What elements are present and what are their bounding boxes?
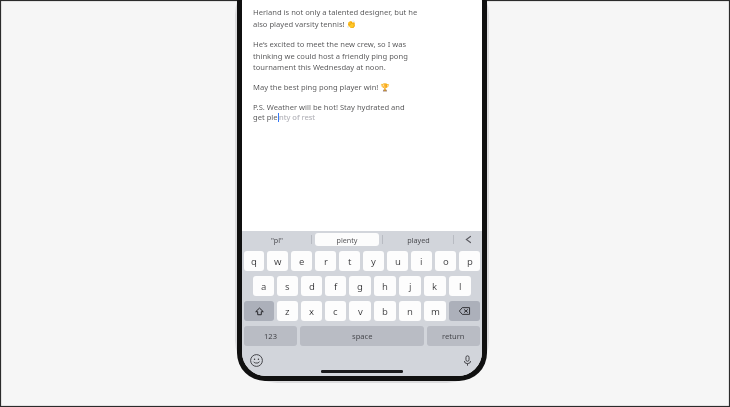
button[interactable]: Collapse predictions — [454, 231, 482, 248]
button[interactable]: l — [449, 276, 471, 296]
button[interactable]: o — [435, 251, 456, 271]
staticText: "pl" — [271, 235, 283, 245]
staticText: played — [407, 235, 430, 245]
button[interactable]: g — [349, 276, 371, 296]
staticText: get ple — [253, 112, 278, 122]
staticText: k — [432, 280, 438, 293]
staticText: He‘s excited to meet the new crew, so I … — [253, 39, 408, 72]
button[interactable]: Emoji — [250, 354, 263, 367]
staticText: s — [285, 280, 290, 293]
button[interactable]: c — [325, 301, 346, 321]
staticText: d — [309, 280, 315, 293]
staticText: m — [431, 305, 440, 318]
staticText: l — [459, 280, 462, 293]
staticText: i — [420, 255, 423, 268]
staticText: w — [274, 255, 282, 268]
button[interactable]: q — [244, 251, 264, 271]
staticText: 123 — [264, 331, 278, 341]
button[interactable]: i — [411, 251, 432, 271]
staticText: t — [348, 255, 352, 268]
staticText: v — [358, 305, 363, 318]
button[interactable]: space — [300, 326, 424, 346]
staticText: nty of rest — [279, 112, 316, 122]
button[interactable]: 123 — [244, 326, 297, 346]
staticText: j — [409, 280, 412, 293]
button[interactable]: z — [277, 301, 298, 321]
staticText: r — [324, 255, 328, 268]
button[interactable]: n — [399, 301, 421, 321]
button[interactable]: played — [386, 233, 450, 246]
button[interactable]: y — [363, 251, 384, 271]
staticText: o — [443, 255, 449, 268]
staticText: c — [333, 305, 338, 318]
staticText: g — [357, 280, 363, 293]
staticText: P.S. Weather will be hot! Stay hydrated … — [253, 102, 405, 112]
button[interactable]: Shift — [244, 301, 274, 321]
staticText: May the best ping pong player win! 🏆 — [253, 82, 390, 92]
button[interactable]: f — [325, 276, 346, 296]
button[interactable]: m — [424, 301, 446, 321]
staticText: Herland is not only a talented designer,… — [253, 7, 418, 29]
button[interactable]: p — [459, 251, 480, 271]
staticText: y — [371, 255, 376, 268]
button[interactable]: s — [277, 276, 298, 296]
button[interactable]: h — [374, 276, 396, 296]
button[interactable]: "pl" — [245, 233, 308, 246]
staticText: space — [352, 331, 373, 341]
staticText: n — [407, 305, 413, 318]
button[interactable]: return — [427, 326, 480, 346]
button[interactable]: b — [374, 301, 396, 321]
button[interactable]: r — [315, 251, 336, 271]
button[interactable]: x — [301, 301, 322, 321]
staticText: return — [442, 331, 465, 341]
button[interactable]: w — [267, 251, 288, 271]
button[interactable]: v — [349, 301, 371, 321]
button[interactable]: Dictation — [461, 354, 474, 367]
staticText: x — [309, 305, 315, 318]
staticText: h — [382, 280, 388, 293]
staticText: plenty — [336, 235, 358, 245]
button[interactable]: j — [399, 276, 421, 296]
staticText: e — [299, 255, 305, 268]
button[interactable]: t — [339, 251, 360, 271]
staticText: p — [467, 255, 473, 268]
button[interactable]: plenty — [315, 233, 379, 246]
button[interactable]: Backspace — [449, 301, 480, 321]
button[interactable]: e — [291, 251, 312, 271]
staticText: b — [382, 305, 388, 318]
staticText: z — [285, 305, 290, 318]
staticText: f — [334, 280, 338, 293]
button[interactable]: d — [301, 276, 322, 296]
button[interactable]: u — [387, 251, 408, 271]
staticText: u — [395, 255, 401, 268]
staticText: a — [261, 280, 267, 293]
button[interactable]: k — [424, 276, 446, 296]
staticText: q — [251, 255, 257, 268]
button[interactable]: a — [253, 276, 274, 296]
